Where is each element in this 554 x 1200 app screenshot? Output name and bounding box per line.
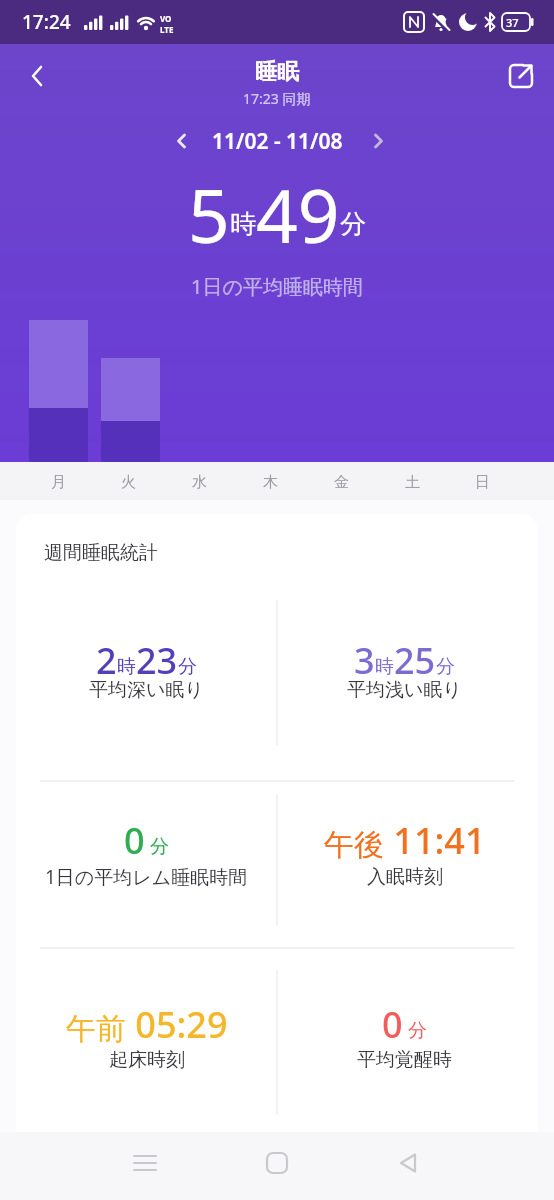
staticText: 入眠時刻: [367, 865, 443, 889]
staticText: 時: [117, 655, 136, 679]
staticText: 午後: [324, 826, 384, 864]
staticText: 23: [136, 636, 178, 684]
staticText: VO: [160, 13, 172, 24]
staticText: 平均浅い眠り: [347, 678, 462, 702]
staticText: 11/02 - 11/08: [212, 127, 343, 156]
button[interactable]: 3: [274, 636, 535, 684]
staticText: 5: [188, 165, 230, 245]
button[interactable]: [16, 56, 60, 96]
button[interactable]: [376, 1131, 440, 1195]
staticText: 週間睡眠統計: [44, 541, 158, 565]
button[interactable]: 午前: [16, 1000, 277, 1048]
button[interactable]: 午後: [274, 816, 535, 864]
staticText: 分: [436, 655, 455, 679]
staticText: 平均覚醒時: [357, 1048, 452, 1072]
button[interactable]: [245, 1131, 309, 1195]
staticText: 月: [51, 473, 66, 492]
button[interactable]: [498, 54, 544, 98]
button[interactable]: 0: [274, 1000, 535, 1048]
staticText: 0: [124, 816, 145, 864]
staticText: 11:41: [384, 816, 486, 864]
staticText: 分: [403, 1017, 427, 1043]
staticText: 2: [96, 636, 117, 684]
staticText: 25: [394, 636, 436, 684]
staticText: 37: [506, 15, 519, 30]
staticText: 水: [192, 473, 207, 492]
staticText: 土: [405, 473, 420, 492]
staticText: 05:29: [126, 1000, 228, 1048]
staticText: 平均深い眠り: [89, 678, 204, 702]
button[interactable]: [356, 122, 400, 160]
staticText: 木: [263, 473, 278, 492]
staticText: 時: [375, 655, 394, 679]
staticText: 49: [256, 165, 340, 245]
staticText: 0: [382, 1000, 403, 1048]
staticText: 17:24: [22, 9, 71, 35]
staticText: 午前: [66, 1010, 126, 1048]
staticText: 1日の平均睡眠時間: [191, 273, 363, 300]
staticText: 火: [121, 473, 136, 492]
staticText: LTE: [160, 24, 174, 35]
button[interactable]: [113, 1131, 177, 1195]
staticText: 17:23 同期: [243, 89, 311, 108]
button[interactable]: [160, 122, 204, 160]
button[interactable]: 2: [16, 636, 277, 684]
staticText: 分: [178, 655, 197, 679]
staticText: 分: [340, 208, 366, 241]
staticText: 起床時刻: [109, 1048, 185, 1072]
staticText: 分: [145, 833, 169, 859]
staticText: 睡眠: [255, 58, 299, 86]
staticText: 1日の平均レム睡眠時間: [45, 864, 248, 890]
staticText: 金: [334, 473, 349, 492]
staticText: 3: [354, 636, 375, 684]
button[interactable]: 0: [16, 816, 277, 864]
staticText: 日: [475, 473, 490, 492]
staticText: 時: [230, 208, 256, 241]
